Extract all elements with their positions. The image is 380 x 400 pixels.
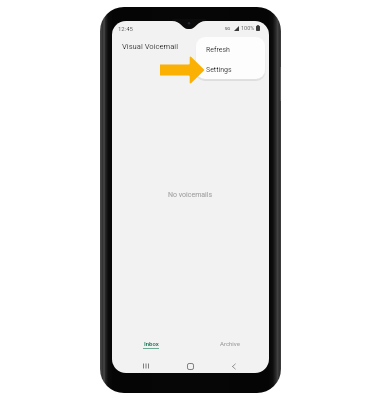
button[interactable]: Archive — [190, 334, 269, 354]
button[interactable]: Recents — [137, 358, 155, 373]
button[interactable]: Inbox — [112, 334, 190, 354]
button[interactable]: Refresh — [196, 39, 265, 60]
button[interactable]: Back — [225, 358, 243, 373]
other: Pointer to Settings — [160, 56, 205, 84]
staticText: Refresh — [206, 46, 230, 54]
staticText: Settings — [206, 66, 232, 74]
staticText: Archive — [220, 340, 240, 347]
staticText: 5G — [225, 26, 231, 31]
button[interactable]: Settings — [196, 59, 265, 79]
staticText: 100% — [241, 25, 255, 31]
button[interactable]: Home — [181, 358, 199, 373]
staticText: Inbox — [144, 340, 159, 347]
button[interactable]: Visual Voicemail — [112, 35, 269, 58]
staticText: 12:45 — [118, 25, 133, 32]
staticText: No voicemails — [168, 191, 213, 199]
staticText: Visual Voicemail — [122, 42, 178, 51]
